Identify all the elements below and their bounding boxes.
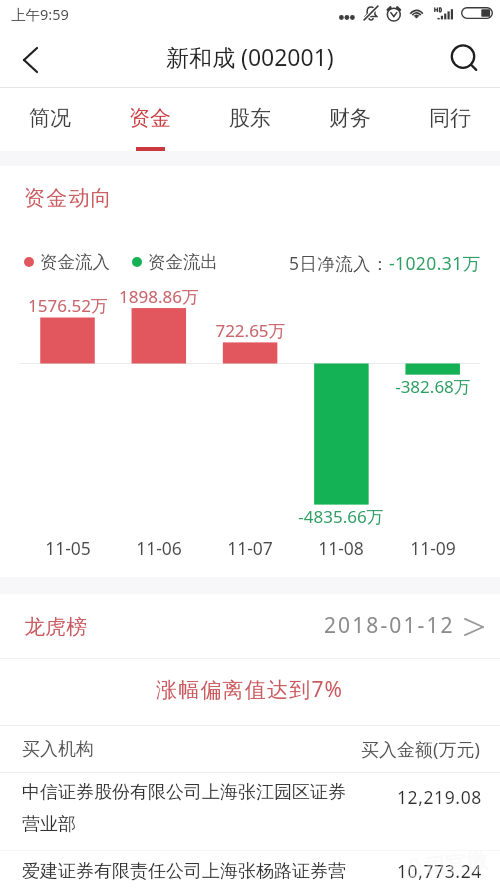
staticText: 资金动向: [24, 185, 113, 211]
button[interactable]: Search: [436, 32, 494, 88]
staticText: 简况: [29, 105, 71, 131]
button[interactable]: 股东: [200, 89, 300, 151]
staticText: 资金: [129, 105, 171, 131]
staticText: -4835.66万: [298, 505, 384, 528]
button[interactable]: 简况: [0, 89, 100, 151]
staticText: 同行: [429, 105, 471, 131]
staticText: 股东: [229, 105, 271, 131]
staticText: 11-07: [227, 536, 273, 560]
staticText: 2018-01-12: [324, 611, 455, 640]
staticText: 资金流出: [148, 251, 218, 273]
staticText: 上午9:59: [11, 4, 69, 24]
staticText: 11-05: [45, 536, 91, 560]
staticText: 11-08: [318, 536, 364, 560]
staticText: 龙虎榜: [24, 614, 87, 640]
staticText: 买入金额(万元): [361, 737, 480, 762]
staticText: 11-06: [136, 536, 182, 560]
button[interactable]: Back: [0, 32, 56, 88]
staticText: 1576.52万: [28, 294, 108, 317]
button[interactable]: 财务: [300, 89, 400, 151]
staticText: 资金流入: [40, 251, 110, 273]
staticText: 1898.86万: [119, 285, 199, 308]
staticText: 722.65万: [215, 319, 286, 342]
staticText: 5日净流入：: [289, 251, 389, 275]
staticText: 财务: [329, 105, 371, 131]
staticText: 爱建证券有限责任公司上海张杨路证券营业部: [22, 860, 352, 888]
staticText: 12,219.08: [397, 785, 482, 809]
button[interactable]: 同行: [400, 89, 500, 151]
staticText: 公司官微: [403, 847, 489, 883]
staticText: 中信证券股份有限公司上海张江园区证券营业部: [22, 781, 352, 835]
staticText: 11-09: [410, 536, 456, 560]
staticText: 新和成 (002001): [166, 41, 334, 72]
button[interactable]: 资金: [100, 89, 200, 151]
button[interactable]: 龙虎榜: [0, 594, 500, 659]
button[interactable]: 中信证券股份有限公司上海张江园区证券营业部: [0, 773, 500, 851]
staticText: -1020.31万: [389, 251, 481, 275]
button[interactable]: 爱建证券有限责任公司上海张杨路证券营业部: [0, 852, 500, 888]
staticText: -382.68万: [395, 375, 471, 398]
staticText: 买入机构: [22, 738, 94, 761]
staticText: 10,773.24: [397, 859, 482, 883]
staticText: 涨幅偏离值达到7%: [156, 675, 344, 704]
